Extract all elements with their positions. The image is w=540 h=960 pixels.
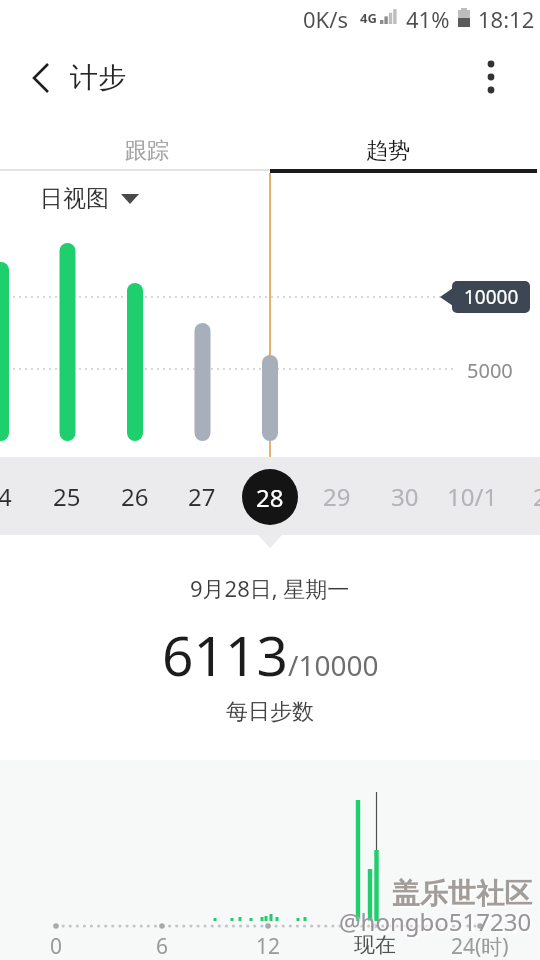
button[interactable]: 25 [34, 464, 100, 528]
button[interactable]: 4 [0, 464, 38, 528]
staticText: 现在 [354, 932, 396, 958]
button[interactable]: 日视图 [40, 183, 141, 213]
staticText: 计步 [70, 60, 126, 95]
staticText: 26 [121, 480, 149, 513]
staticText: 每日步数 [226, 698, 314, 726]
staticText: 5000 [467, 357, 513, 384]
staticText: 27 [188, 480, 216, 513]
button[interactable]: 26 [102, 464, 168, 528]
button[interactable] [24, 58, 64, 98]
staticText: 跟踪 [125, 137, 169, 165]
staticText: 6113 [162, 617, 288, 692]
button[interactable]: 跟踪 [27, 128, 267, 173]
staticText: 趋势 [366, 137, 410, 165]
staticText: @hongbo517230 [339, 905, 532, 938]
staticText: /10000 [288, 646, 379, 684]
staticText: 0 [50, 932, 63, 960]
button[interactable]: 30 [372, 464, 438, 528]
staticText: 盖乐世社区 [392, 876, 532, 911]
staticText: 10/1 [447, 480, 498, 513]
staticText: 41% [406, 4, 450, 32]
staticText: 4 [0, 480, 12, 513]
button[interactable]: 29 [304, 464, 370, 528]
staticText: 25 [53, 480, 81, 513]
staticText: 9月28日, 星期一 [190, 573, 350, 603]
button[interactable]: 趋势 [268, 128, 508, 173]
staticText: 4G [360, 9, 377, 27]
staticText: 2 [533, 480, 540, 513]
button[interactable]: 10/1 [439, 464, 505, 528]
staticText: 30 [391, 480, 419, 513]
staticText: 12 [256, 932, 281, 960]
button[interactable] [470, 54, 512, 100]
button[interactable]: 2 [507, 464, 540, 528]
staticText: 10000 [464, 284, 519, 310]
staticText: 24(时) [451, 932, 509, 960]
staticText: 6 [156, 932, 169, 960]
staticText: 29 [323, 480, 351, 513]
staticText: 28 [256, 481, 284, 514]
staticText: 0K/s [303, 4, 348, 32]
staticText: 日视图 [40, 184, 109, 213]
staticText: 18:12 [478, 4, 535, 32]
button[interactable]: 27 [169, 464, 235, 528]
button[interactable]: 28 [242, 469, 298, 525]
